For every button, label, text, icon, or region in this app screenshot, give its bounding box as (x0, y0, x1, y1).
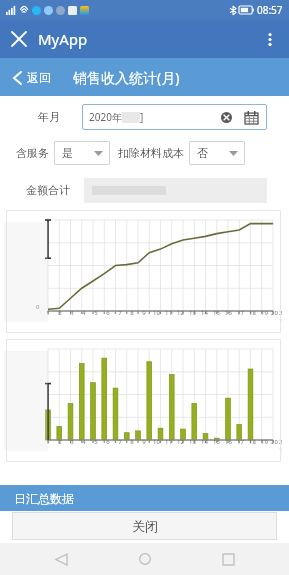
staticText: 11 (165, 309, 172, 317)
staticText: 19 (261, 438, 268, 446)
staticText: 扣除材料成本 (118, 146, 184, 160)
staticText: 金额合计 (26, 183, 70, 197)
staticText: 7 (118, 309, 122, 317)
button[interactable]: 2020年 (82, 104, 267, 130)
staticText: 16 (225, 438, 232, 446)
button[interactable]: 是 (54, 141, 110, 165)
staticText: 1 (46, 309, 50, 317)
staticText: 5 (94, 309, 98, 317)
button[interactable]: Home (122, 543, 168, 575)
staticText: 15 (213, 438, 220, 446)
staticText: 19 (261, 309, 268, 317)
staticText: 13 (189, 438, 196, 446)
button[interactable]: Recent apps (205, 543, 251, 575)
staticText: 年月 (38, 110, 60, 124)
staticText: 4 (82, 438, 86, 446)
staticText: 返回 (27, 70, 51, 85)
staticText: 9 (142, 438, 146, 446)
staticText: 15 (213, 309, 220, 317)
staticText: 含服务 (16, 146, 49, 160)
staticText: 销售收入统计(月) (73, 68, 180, 87)
staticText: 5 (94, 438, 98, 446)
staticText: 12 (177, 309, 184, 317)
button[interactable]: Close (0, 20, 38, 58)
staticText: 20 (271, 438, 278, 446)
staticText: 6 (106, 438, 110, 446)
staticText: 16 (225, 309, 232, 317)
staticText: 17 (237, 438, 244, 446)
button[interactable]: More options (251, 20, 289, 58)
staticText: 20 (271, 309, 278, 317)
staticText: 6 (106, 309, 110, 317)
button[interactable]: Back (38, 543, 84, 575)
staticText: 4 (82, 309, 86, 317)
button[interactable]: 返回 (0, 64, 57, 91)
staticText: 17 (237, 309, 244, 317)
button[interactable]: 关闭 (12, 512, 277, 540)
staticText: 10 (153, 438, 160, 446)
staticText: 08:57 (257, 3, 283, 17)
button[interactable]: Pick date (239, 105, 263, 129)
staticText: 3 (70, 438, 74, 446)
staticText: 2 (58, 438, 62, 446)
staticText: 9 (142, 309, 146, 317)
staticText: 关闭 (132, 518, 158, 534)
button[interactable]: 否 (189, 141, 245, 165)
staticText: 14 (201, 438, 208, 446)
button[interactable]: Clear (215, 106, 237, 128)
button[interactable] (84, 178, 267, 203)
staticText: 18 (249, 438, 256, 446)
staticText: 7 (118, 438, 122, 446)
staticText: MyApp (38, 29, 88, 49)
staticText: 8 (130, 438, 134, 446)
staticText: 13 (189, 309, 196, 317)
staticText: 10 (153, 309, 160, 317)
staticText: 11 (165, 438, 172, 446)
staticText: 14 (201, 309, 208, 317)
staticText: 2020年 (89, 110, 122, 124)
staticText: 2 (58, 309, 62, 317)
staticText: 否 (197, 146, 208, 160)
staticText: 0 (36, 303, 40, 311)
staticText: 3 (70, 309, 74, 317)
button[interactable]: 日汇总数据 (0, 485, 289, 511)
staticText: ] (140, 110, 144, 124)
staticText: 18 (249, 309, 256, 317)
staticText: 1 (46, 438, 50, 446)
staticText: 是 (62, 146, 73, 160)
staticText: 日汇总数据 (14, 491, 74, 506)
staticText: 12 (177, 438, 184, 446)
staticText: 8 (130, 309, 134, 317)
